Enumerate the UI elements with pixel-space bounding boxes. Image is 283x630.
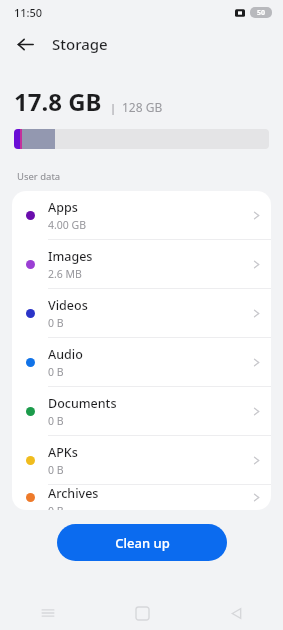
staticText: Archives: [48, 485, 99, 502]
staticText: 0 B: [48, 463, 64, 477]
staticText: 11:50: [14, 5, 43, 20]
staticText: 17.8 GB: [14, 85, 102, 118]
staticText: 50: [257, 8, 266, 18]
staticText: Audio: [48, 346, 83, 363]
staticText: 2.6 MB: [48, 267, 82, 281]
button[interactable]: APKs: [12, 436, 271, 484]
button[interactable]: Images: [12, 240, 271, 288]
staticText: 4.00 GB: [48, 218, 87, 232]
button[interactable]: Audio: [12, 338, 271, 386]
staticText: Documents: [48, 395, 117, 412]
staticText: Apps: [48, 199, 78, 216]
staticText: Videos: [48, 297, 88, 314]
button[interactable]: Clean up: [57, 524, 227, 561]
staticText: 0 B: [48, 414, 64, 428]
button[interactable]: Documents: [12, 387, 271, 435]
button[interactable]: Back: [12, 31, 38, 57]
button[interactable]: Home: [95, 596, 189, 630]
staticText: 0 B: [48, 316, 64, 330]
button[interactable]: Apps: [12, 191, 271, 239]
staticText: Clean up: [115, 534, 170, 552]
staticText: User data: [17, 170, 61, 183]
staticText: Storage: [52, 34, 108, 54]
staticText: Images: [48, 248, 93, 265]
button[interactable]: Archives: [12, 485, 271, 510]
staticText: 128 GB: [122, 99, 163, 115]
staticText: |: [110, 100, 117, 115]
staticText: APKs: [48, 444, 78, 461]
staticText: 0 B: [48, 365, 64, 379]
staticText: 0 B: [48, 504, 64, 510]
button[interactable]: Videos: [12, 289, 271, 337]
